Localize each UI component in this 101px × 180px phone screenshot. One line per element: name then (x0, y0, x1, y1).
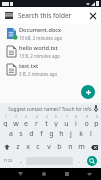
button[interactable]: Clear search (85, 7, 101, 24)
button[interactable]: ?123 (0, 154, 16, 168)
staticText: 9 (86, 114, 88, 119)
button[interactable]: Search (87, 156, 97, 166)
button[interactable]: Back (12, 168, 29, 180)
button[interactable]: Voice input (91, 103, 101, 114)
button[interactable]: Document.docx (0, 24, 101, 42)
button[interactable]: Hide keyboard (81, 168, 98, 180)
staticText: s (19, 129, 23, 139)
staticText: 1 (5, 114, 7, 119)
button[interactable]: d (26, 127, 36, 140)
button[interactable]: 7 (61, 114, 71, 127)
button[interactable]: 2 (11, 114, 21, 127)
button[interactable]: hello world.txt (0, 42, 101, 60)
button[interactable]: 4 (31, 114, 41, 127)
staticText: b (57, 142, 62, 152)
button[interactable]: 3 (21, 114, 31, 127)
staticText: f (40, 129, 43, 139)
staticText: 8 (75, 114, 77, 119)
staticText: 5 (46, 114, 48, 119)
button[interactable]: 5 (41, 114, 51, 127)
button[interactable]: c (33, 140, 43, 154)
staticText: o (84, 119, 89, 127)
staticText: , (20, 157, 22, 165)
staticText: g (49, 129, 54, 139)
button[interactable]: 9 (81, 114, 91, 127)
button[interactable]: test.txt (0, 60, 101, 78)
button[interactable]: 8 (71, 114, 81, 127)
staticText: h (59, 129, 64, 139)
button[interactable]: a (6, 127, 16, 140)
button[interactable]: Open navigation drawer (0, 7, 18, 24)
button[interactable]: j (66, 127, 76, 140)
button[interactable]: . (74, 154, 83, 168)
button[interactable]: Home (35, 168, 52, 180)
staticText: w (13, 119, 19, 127)
staticText: m (78, 142, 85, 152)
button[interactable]: Create new file (81, 85, 95, 99)
staticText: Document.docx (19, 26, 62, 34)
button[interactable]: l (86, 127, 96, 140)
button[interactable]: Recent apps (58, 168, 75, 180)
button[interactable]: f (36, 127, 46, 140)
staticText: t (45, 119, 48, 127)
button[interactable]: Shift (0, 140, 13, 154)
staticText: 7 (66, 114, 68, 119)
staticText: r (35, 119, 38, 127)
button[interactable]: g (46, 127, 56, 140)
staticText: 3 B, 2 minutes ago (19, 71, 58, 77)
staticText: . (78, 157, 80, 165)
staticText: 10 kB, 2 minutes ago (19, 35, 63, 41)
staticText: a (9, 129, 13, 139)
staticText: j (70, 129, 72, 139)
staticText: z (16, 142, 20, 152)
staticText: q (3, 119, 8, 127)
button[interactable]: m (76, 140, 87, 154)
staticText: p (94, 119, 99, 127)
staticText: c (36, 142, 40, 152)
staticText: 6 (55, 114, 57, 119)
button[interactable]: z (13, 140, 23, 154)
staticText: i (75, 119, 77, 127)
staticText: 13 B, 2 minutes ago (19, 53, 60, 59)
staticText: 0 (96, 114, 98, 119)
button[interactable]: Suggest contact names? Touch for info. (8, 106, 93, 112)
button[interactable]: s (16, 127, 26, 140)
button[interactable]: h (56, 127, 66, 140)
staticText: v (47, 142, 51, 152)
button[interactable]: Backspace (87, 140, 101, 154)
staticText: 2 (15, 114, 17, 119)
staticText: n (68, 142, 73, 152)
staticText: test.txt (19, 62, 39, 70)
button[interactable]: 0 (91, 114, 101, 127)
staticText: y (54, 119, 58, 127)
staticText: x (26, 142, 30, 152)
button[interactable]: , (16, 154, 25, 168)
staticText: d (29, 129, 34, 139)
button[interactable]: 1 (0, 114, 11, 127)
staticText: l (90, 129, 92, 139)
staticText: Search this folder (18, 11, 85, 20)
button[interactable]: x (23, 140, 33, 154)
button[interactable]: v (43, 140, 54, 154)
staticText: u (64, 119, 69, 127)
button[interactable]: n (65, 140, 76, 154)
button[interactable]: 6 (51, 114, 61, 127)
button[interactable]: b (54, 140, 65, 154)
staticText: e (24, 119, 28, 127)
button[interactable]: k (76, 127, 86, 140)
staticText: hello world.txt (19, 44, 58, 52)
staticText: ?123 (3, 158, 13, 164)
staticText: 3 (25, 114, 27, 119)
staticText: k (79, 129, 83, 139)
staticText: 4 (36, 114, 38, 119)
